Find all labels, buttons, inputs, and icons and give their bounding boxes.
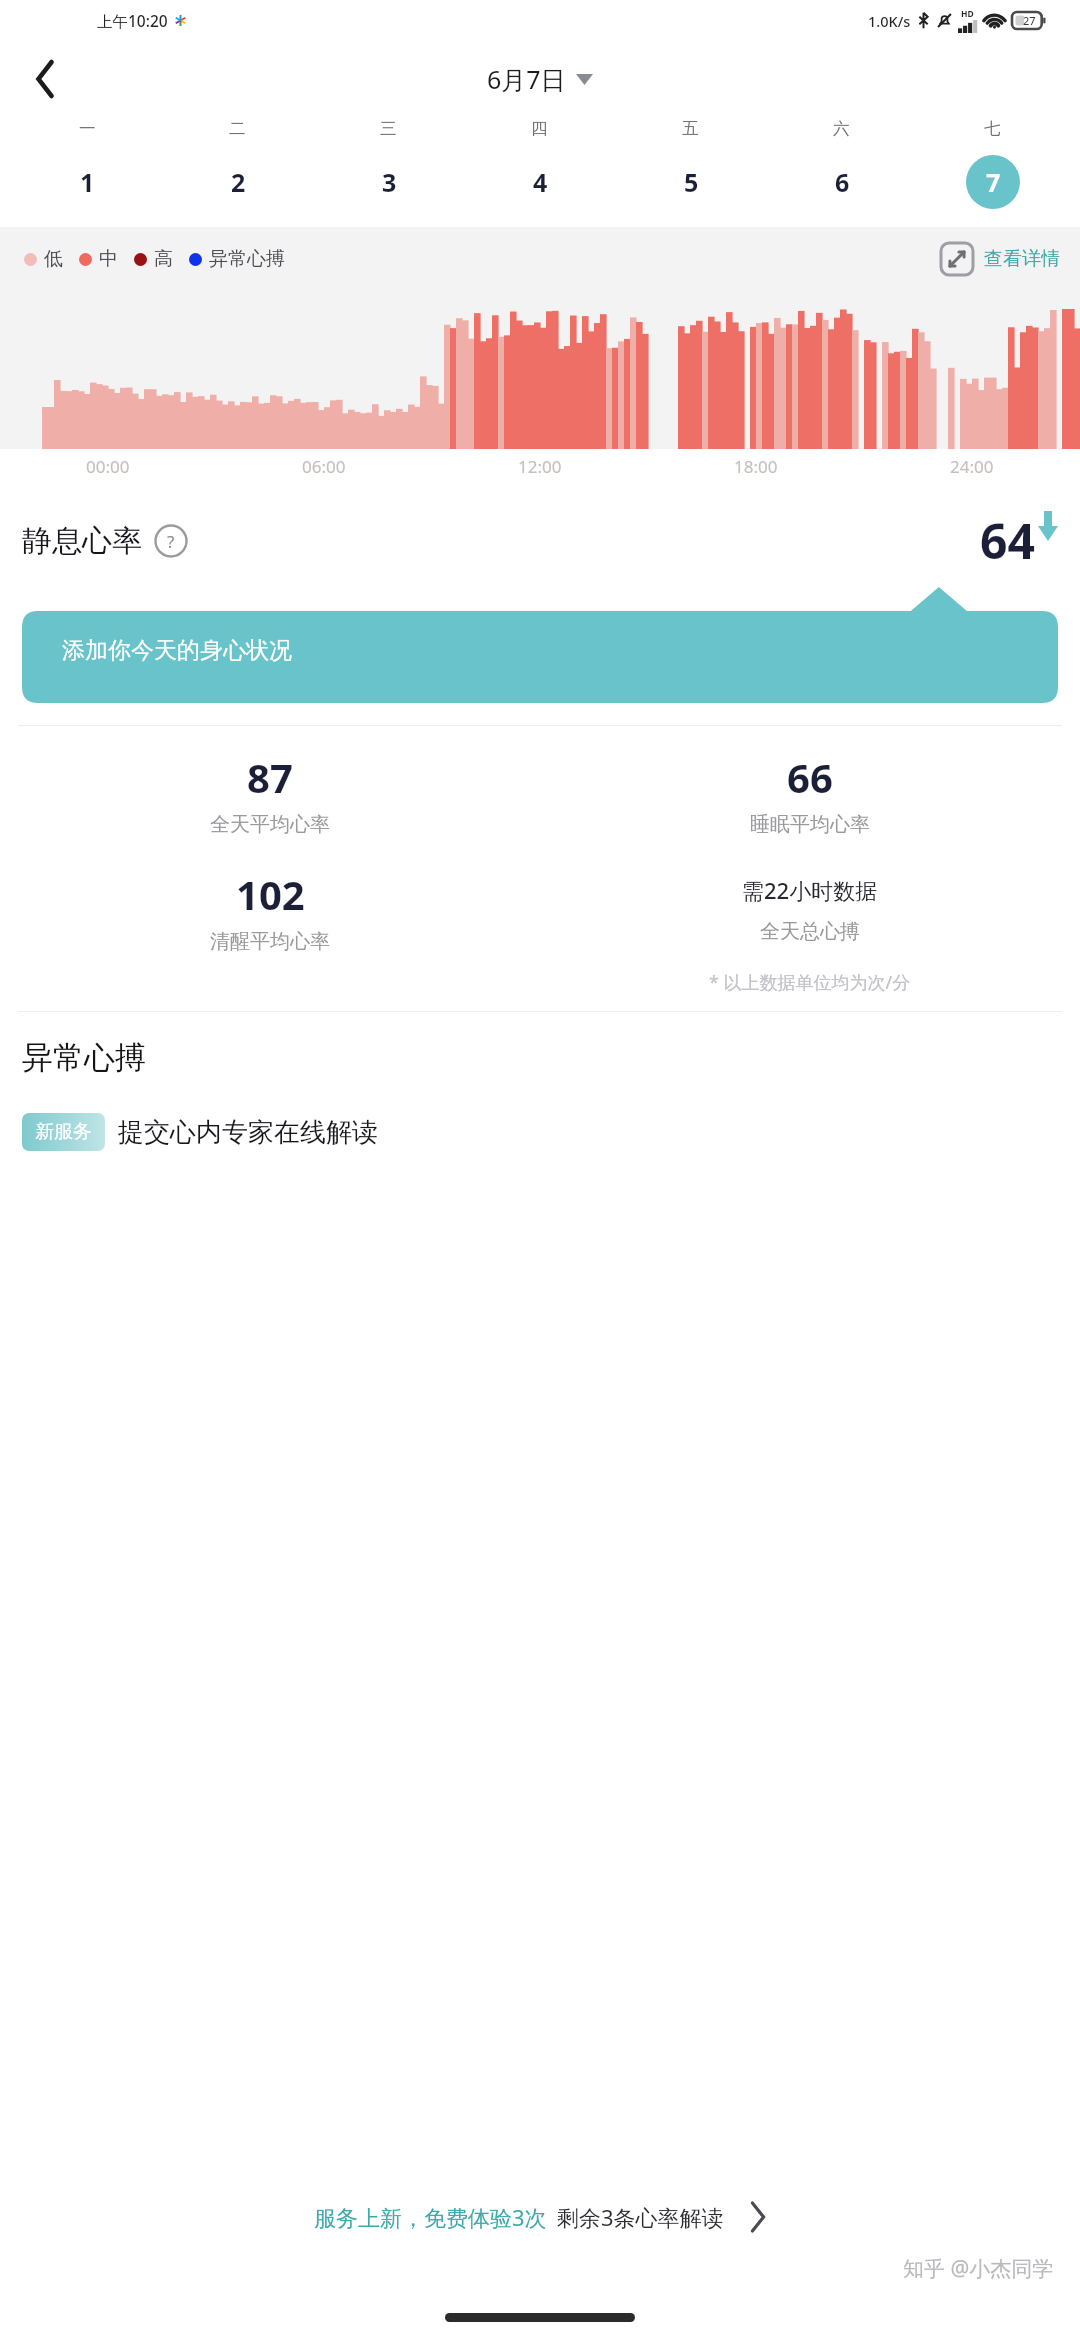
staticText: 一: [79, 118, 96, 139]
staticText: 12:00: [518, 455, 562, 478]
staticText: 7: [986, 165, 1001, 199]
button[interactable]: 添加你今天的身心状况: [22, 587, 1058, 703]
staticText: 添加你今天的身心状况: [62, 636, 292, 665]
staticText: 00:00: [86, 455, 130, 478]
staticText: 5: [684, 165, 699, 199]
staticText: 新服务: [35, 1120, 92, 1144]
button[interactable]: 四: [464, 118, 615, 209]
staticText: 2: [231, 165, 246, 199]
staticText: 剩余3条心率解读: [557, 2202, 724, 2232]
staticText: 查看详情: [984, 247, 1060, 271]
button[interactable]: 六: [766, 118, 917, 209]
button[interactable]: 102: [0, 867, 540, 954]
staticText: 6月7日: [487, 62, 566, 96]
staticText: 1: [80, 165, 95, 199]
staticText: * 以上数据单位均为次/分: [709, 970, 911, 995]
staticText: 中: [99, 247, 118, 271]
staticText: 异常心搏: [22, 1038, 146, 1077]
staticText: 18:00: [734, 455, 778, 478]
button[interactable]: 87: [0, 750, 540, 837]
button[interactable]: 服务上新，免费体验3次: [0, 2186, 1080, 2248]
staticText: 七: [984, 118, 1001, 139]
staticText: 上午10:20: [97, 10, 168, 31]
staticText: 全天总心搏: [760, 919, 860, 944]
staticText: 27: [1023, 13, 1036, 28]
staticText: 清醒平均心率: [210, 929, 330, 954]
button[interactable]: 6月7日: [487, 62, 593, 96]
staticText: 睡眠平均心率: [750, 812, 870, 837]
staticText: ?: [167, 530, 175, 553]
button[interactable]: Help: [154, 524, 188, 558]
staticText: 五: [682, 118, 699, 139]
staticText: 服务上新，免费体验3次: [314, 2202, 547, 2232]
staticText: 66: [787, 750, 833, 804]
staticText: 静息心率: [22, 522, 142, 560]
button[interactable]: Back: [18, 51, 74, 107]
staticText: 6: [835, 165, 850, 199]
staticText: 六: [833, 118, 850, 139]
staticText: 64: [980, 508, 1035, 573]
staticText: 102: [236, 867, 305, 921]
button[interactable]: 二: [162, 118, 313, 209]
staticText: 1.0K/s: [868, 11, 911, 31]
staticText: 低: [44, 247, 63, 271]
staticText: 需22小时数据: [742, 875, 878, 905]
button[interactable]: 一: [12, 118, 162, 209]
staticText: 异常心搏: [209, 247, 285, 271]
staticText: 87: [247, 750, 293, 804]
staticText: 全天平均心率: [210, 812, 330, 837]
button[interactable]: 七: [917, 118, 1068, 209]
button[interactable]: 五: [615, 118, 766, 209]
staticText: 提交心内专家在线解读: [118, 1116, 378, 1149]
staticText: 高: [154, 247, 173, 271]
button[interactable]: 新服务: [22, 1113, 378, 1151]
staticText: 二: [229, 118, 246, 139]
staticText: 4: [533, 165, 548, 199]
staticText: HD: [961, 8, 974, 20]
staticText: 知乎 @小杰同学: [903, 2254, 1054, 2283]
staticText: 06:00: [302, 455, 346, 478]
staticText: 三: [380, 118, 397, 139]
staticText: 四: [531, 118, 548, 139]
button[interactable]: 三: [313, 118, 464, 209]
button[interactable]: 66: [540, 750, 1080, 837]
button[interactable]: 查看详情: [941, 243, 1060, 275]
staticText: 24:00: [950, 455, 994, 478]
staticText: 3: [382, 165, 397, 199]
